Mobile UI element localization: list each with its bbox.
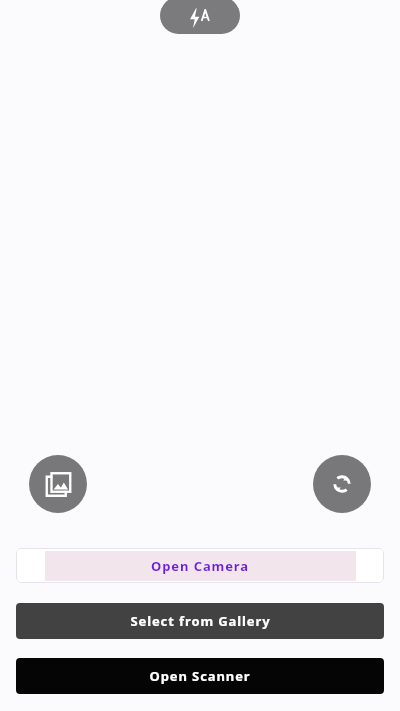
staticText: Select from Gallery xyxy=(130,612,271,630)
button[interactable]: Select from Gallery xyxy=(16,603,384,639)
button[interactable]: Switch camera xyxy=(313,455,371,513)
button[interactable]: Open Scanner xyxy=(16,658,384,694)
button[interactable]: Flash auto xyxy=(160,0,240,34)
staticText: Open Scanner xyxy=(149,667,251,685)
staticText: Open Camera xyxy=(151,557,249,575)
button[interactable]: Open gallery xyxy=(29,455,87,513)
button[interactable]: Open Camera xyxy=(16,548,384,583)
